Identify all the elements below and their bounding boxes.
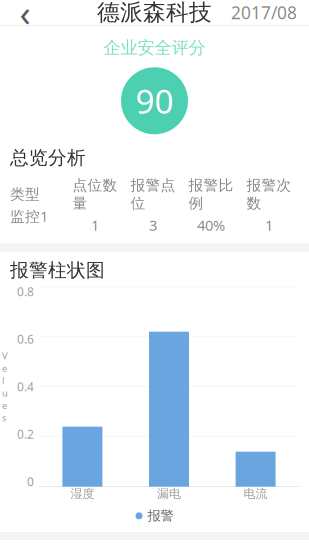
staticText: 漏电: [157, 486, 181, 501]
staticText: 监控1: [10, 206, 48, 226]
staticText: ‹: [19, 0, 30, 36]
staticText: 报警: [147, 508, 173, 524]
staticText: 1: [91, 215, 99, 235]
staticText: 3: [149, 215, 157, 235]
button[interactable]: 2017/08: [226, 0, 302, 26]
staticText: 报警次数: [246, 176, 291, 212]
staticText: 2017/08: [231, 1, 297, 24]
staticText: 总览分析: [10, 146, 86, 169]
staticText: 类型: [10, 185, 40, 203]
button[interactable]: Back: [7, 0, 43, 26]
staticText: 德派森科技: [97, 0, 212, 26]
staticText: 90: [135, 79, 173, 123]
staticText: 40%: [197, 215, 225, 235]
staticText: 企业安全评分: [103, 37, 205, 58]
staticText: 报警比例: [188, 176, 233, 212]
staticText: 0.4: [17, 379, 34, 395]
staticText: 报警点位: [130, 176, 175, 212]
staticText: 0: [27, 474, 34, 490]
staticText: 电流: [244, 486, 268, 501]
staticText: V e l u e s: [2, 349, 8, 424]
staticText: 0.2: [17, 426, 34, 442]
staticText: 报警柱状图: [10, 259, 105, 282]
staticText: 湿度: [70, 486, 94, 501]
staticText: 1: [265, 215, 273, 235]
staticText: 0.6: [17, 331, 34, 347]
staticText: 0.8: [17, 284, 34, 300]
staticText: 点位数量: [72, 176, 117, 212]
